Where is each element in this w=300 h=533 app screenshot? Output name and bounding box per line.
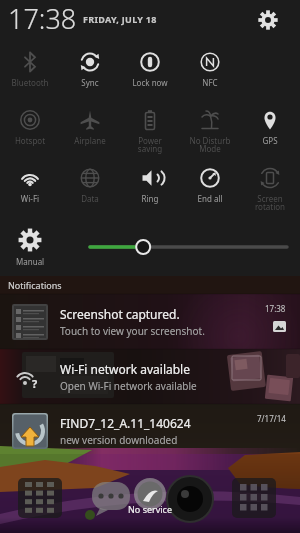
staticText: Touch to view your screenshot. — [60, 324, 205, 338]
button[interactable]: GPS — [240, 102, 300, 160]
staticText: 17:38 — [265, 303, 286, 314]
staticText: Power saving — [121, 135, 179, 154]
button[interactable]: Data — [60, 160, 120, 218]
staticText: Screen rotation — [241, 193, 299, 212]
staticText: Lock now — [121, 77, 179, 88]
staticText: Sync — [61, 77, 119, 88]
button[interactable]: No Disturb Mode — [180, 102, 240, 160]
staticText: Ring — [121, 193, 179, 204]
button[interactable]: End all — [180, 160, 240, 218]
button[interactable]: Lock now — [120, 44, 180, 102]
button[interactable]: Ring — [120, 160, 180, 218]
staticText: Manual — [16, 256, 45, 267]
staticText: GPS — [241, 135, 299, 146]
button[interactable]: Screen rotation — [240, 160, 300, 218]
button[interactable] — [256, 8, 280, 32]
staticText: No service — [128, 503, 173, 515]
staticText: 7/17/14 — [257, 413, 286, 424]
staticText: Bluetooth — [1, 77, 59, 88]
staticText: FRIDAY, JULY 18 — [83, 13, 157, 25]
staticText: Notifications — [8, 279, 62, 291]
staticText: End all — [181, 193, 239, 204]
button[interactable]: Airplane — [60, 102, 120, 160]
staticText: Airplane — [61, 135, 119, 146]
button[interactable]: NFC — [180, 44, 240, 102]
button[interactable]: Manual — [0, 227, 60, 267]
button[interactable]: Hotspot — [0, 102, 60, 160]
staticText: Hotspot — [1, 135, 59, 146]
button[interactable]: Sync — [60, 44, 120, 102]
button[interactable]: ? — [0, 349, 300, 404]
button[interactable]: FIND7_12_A.11_140624 — [0, 404, 300, 458]
staticText: ? — [32, 376, 38, 391]
staticText: Wi-Fi network available — [60, 361, 190, 377]
staticText: FIND7_12_A.11_140624 — [60, 415, 191, 431]
staticText: Open Wi-Fi network available — [60, 379, 197, 393]
staticText: Wi-Fi — [1, 193, 59, 204]
staticText: Data — [61, 193, 119, 204]
button[interactable] — [90, 237, 287, 257]
staticText: Screenshot captured. — [60, 306, 180, 322]
button[interactable]: Bluetooth — [0, 44, 60, 102]
button[interactable]: Power saving — [120, 102, 180, 160]
staticText: NFC — [181, 77, 239, 88]
staticText: new version downloaded — [60, 433, 178, 447]
staticText: No Disturb Mode — [181, 135, 239, 154]
staticText: 17:38 — [8, 0, 77, 37]
button[interactable]: Wi-Fi — [0, 160, 60, 218]
button[interactable]: Screenshot captured. — [0, 294, 300, 349]
